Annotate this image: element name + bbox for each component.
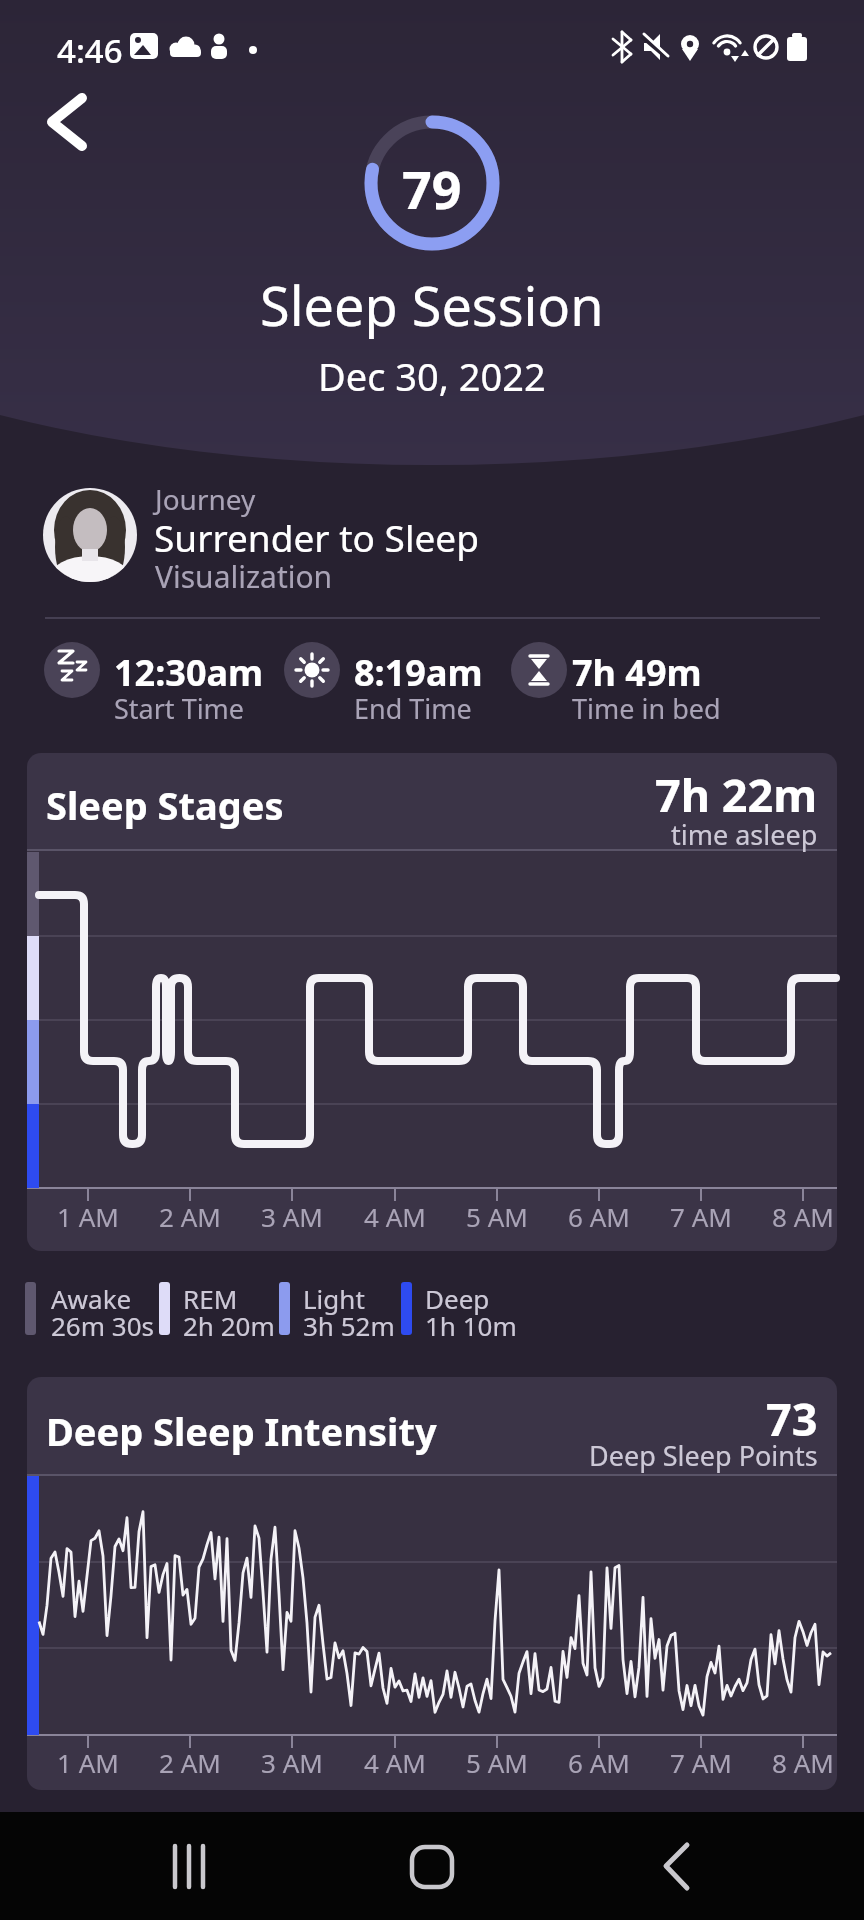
- staticText: 4 AM: [364, 1199, 426, 1234]
- staticText: 1 AM: [57, 1199, 119, 1234]
- button[interactable]: [640, 1827, 720, 1907]
- staticText: 26m 30s: [51, 1308, 155, 1343]
- staticText: Surrender to Sleep: [154, 512, 479, 562]
- staticText: time asleep: [671, 816, 818, 853]
- staticText: 5 AM: [466, 1199, 528, 1234]
- staticText: 1h 10m: [425, 1308, 517, 1343]
- staticText: Start Time: [114, 690, 245, 727]
- staticText: Sleep Stages: [46, 779, 284, 831]
- staticText: Awake: [51, 1281, 132, 1316]
- staticText: Dec 30, 2022: [318, 350, 546, 402]
- staticText: 6 AM: [568, 1199, 630, 1234]
- button[interactable]: [27, 1377, 837, 1790]
- staticText: 73: [766, 1388, 818, 1449]
- staticText: 2 AM: [159, 1199, 221, 1234]
- staticText: Deep: [425, 1281, 490, 1316]
- staticText: End Time: [354, 690, 472, 727]
- staticText: 4 AM: [364, 1745, 426, 1780]
- staticText: 3 AM: [261, 1745, 323, 1780]
- staticText: 12:30am: [114, 648, 264, 697]
- staticText: Sleep Session: [260, 268, 604, 342]
- staticText: Deep Sleep Points: [589, 1437, 818, 1474]
- staticText: Deep Sleep Intensity: [46, 1405, 437, 1457]
- staticText: 4:46: [57, 28, 123, 73]
- button[interactable]: [392, 1827, 472, 1907]
- staticText: 1 AM: [57, 1745, 119, 1780]
- staticText: REM: [183, 1281, 238, 1316]
- button[interactable]: [27, 753, 837, 1251]
- staticText: Light: [303, 1281, 365, 1316]
- staticText: 2h 20m: [183, 1308, 275, 1343]
- staticText: 7h 49m: [572, 648, 702, 697]
- staticText: 7 AM: [670, 1199, 732, 1234]
- staticText: Visualization: [155, 556, 333, 597]
- staticText: 8 AM: [772, 1199, 834, 1234]
- button[interactable]: [150, 1827, 230, 1907]
- staticText: 8:19am: [354, 648, 483, 697]
- staticText: 7 AM: [670, 1745, 732, 1780]
- staticText: 3h 52m: [303, 1308, 395, 1343]
- staticText: 2 AM: [159, 1745, 221, 1780]
- button[interactable]: [36, 92, 98, 154]
- staticText: 8 AM: [772, 1745, 834, 1780]
- staticText: Time in bed: [572, 690, 721, 727]
- staticText: 6 AM: [568, 1745, 630, 1780]
- staticText: 79: [402, 153, 462, 224]
- staticText: Journey: [155, 480, 256, 518]
- staticText: 3 AM: [261, 1199, 323, 1234]
- staticText: 7h 22m: [655, 764, 818, 825]
- button[interactable]: [40, 480, 460, 590]
- staticText: 5 AM: [466, 1745, 528, 1780]
